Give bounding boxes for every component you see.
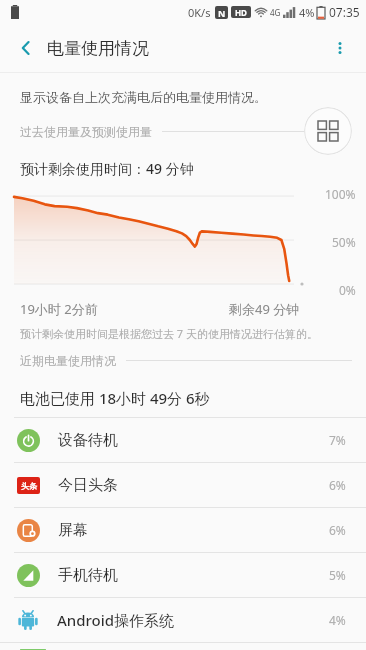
staticText: 显示设备自上次充满电后的电量使用情况。 — [20, 89, 267, 105]
staticText: 电量使用情况 — [47, 38, 149, 59]
staticText: 预计剩余使用时间是根据您过去 7 天的使用情况进行估算的。 — [20, 326, 319, 341]
button[interactable]: 屏幕 — [0, 508, 366, 552]
staticText: 屏幕 — [58, 521, 88, 540]
staticText: 电池已使用 18小时 49分 6秒 — [20, 388, 210, 408]
staticText: 剩余49 分钟 — [229, 300, 300, 318]
staticText: 07:35 — [329, 4, 360, 20]
button[interactable]: More options — [320, 28, 360, 68]
staticText: 4G — [270, 7, 281, 18]
staticText: 0K/s — [188, 5, 211, 20]
staticText: 6% — [329, 477, 346, 493]
staticText: 19小时 2分前 — [20, 300, 98, 318]
button[interactable]: 手机待机 — [0, 553, 366, 597]
staticText: 0% — [339, 282, 356, 298]
staticText: 预计剩余使用时间：49 分钟 — [20, 159, 194, 178]
staticText: 4% — [299, 5, 315, 20]
staticText: 过去使用量及预测使用量 — [20, 124, 152, 139]
button[interactable]: 头条 — [0, 463, 366, 507]
staticText: 4% — [329, 612, 346, 628]
staticText: 头条 — [21, 481, 37, 491]
staticText: HD — [235, 7, 247, 18]
button[interactable]: Android操作系统 — [0, 598, 366, 642]
staticText: 100% — [325, 186, 356, 202]
staticText: Android操作系统 — [57, 610, 175, 630]
staticText: 5% — [329, 567, 346, 583]
button[interactable]: Back — [6, 28, 46, 68]
staticText: 近期电量使用情况 — [20, 353, 116, 368]
staticText: 今日头条 — [58, 476, 118, 495]
staticText: 手机待机 — [58, 566, 118, 585]
staticText: 设备待机 — [58, 431, 118, 450]
staticText: N — [218, 7, 226, 19]
staticText: 6% — [329, 522, 346, 538]
button[interactable]: Grid view — [304, 107, 352, 155]
staticText: 50% — [332, 234, 356, 250]
staticText: 7% — [329, 432, 346, 448]
button[interactable]: 设备待机 — [0, 418, 366, 462]
